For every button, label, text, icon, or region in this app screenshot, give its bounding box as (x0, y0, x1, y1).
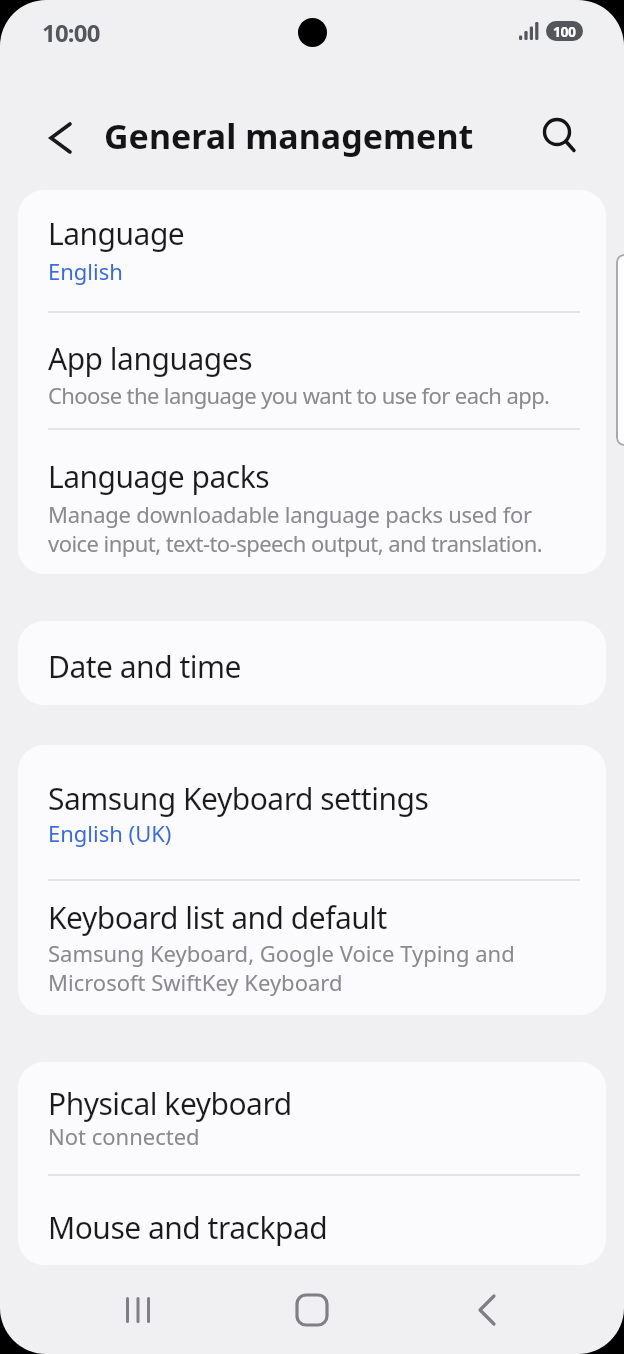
button[interactable] (18, 429, 606, 574)
button[interactable] (18, 1175, 606, 1265)
button[interactable] (18, 190, 606, 312)
staticText: Date and time (48, 646, 241, 687)
button[interactable] (284, 1284, 340, 1336)
button[interactable] (110, 1284, 166, 1336)
staticText: Physical keyboard (48, 1083, 292, 1124)
staticText: voice input, text-to-speech output, and … (48, 528, 543, 558)
button[interactable] (459, 1284, 515, 1336)
staticText: English (UK) (48, 818, 172, 848)
button[interactable] (18, 880, 606, 1015)
button[interactable] (18, 745, 606, 880)
staticText: English (48, 256, 123, 286)
staticText: Manage downloadable language packs used … (48, 499, 532, 529)
staticText: 100 (553, 22, 576, 41)
button[interactable]: Date and time (18, 621, 606, 705)
staticText: Choose the language you want to use for … (48, 380, 550, 410)
staticText: Language (48, 213, 185, 254)
staticText: Microsoft SwiftKey Keyboard (48, 967, 343, 997)
staticText: Language packs (48, 456, 270, 497)
button[interactable] (538, 112, 584, 158)
staticText: Keyboard list and default (48, 897, 387, 938)
button[interactable] (40, 116, 80, 156)
staticText: App languages (48, 338, 253, 379)
staticText: General management (104, 113, 474, 159)
staticText: Not connected (48, 1121, 200, 1151)
button[interactable] (18, 312, 606, 429)
staticText: Mouse and trackpad (48, 1207, 328, 1248)
button[interactable] (18, 1062, 606, 1175)
staticText: Samsung Keyboard, Google Voice Typing an… (48, 938, 515, 968)
staticText: Samsung Keyboard settings (48, 778, 429, 819)
staticText: 10:00 (42, 16, 100, 49)
